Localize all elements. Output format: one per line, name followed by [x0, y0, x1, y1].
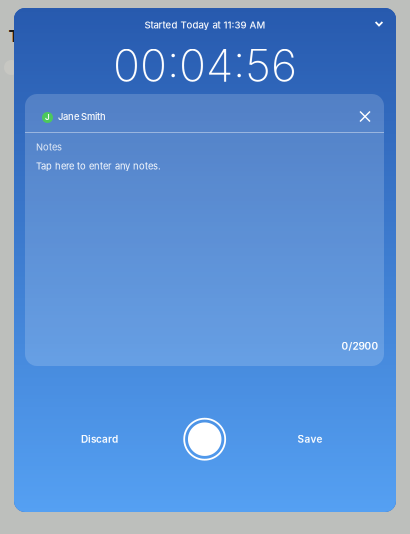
button[interactable]: Remove Jane Smith	[352, 103, 378, 129]
button[interactable]: Stop timer	[181, 415, 229, 463]
staticText: Time	[8, 26, 48, 46]
staticText: 0/2900	[341, 340, 378, 352]
staticText: J	[45, 112, 50, 122]
staticText: Jane Smith	[58, 111, 106, 122]
staticText: Discard	[81, 433, 118, 445]
button[interactable]: Save	[258, 419, 362, 459]
staticText: 00:04:56	[113, 38, 297, 92]
staticText: Save	[297, 433, 322, 445]
button[interactable]: Discard	[47, 419, 151, 459]
staticText: Tap here to enter any notes.	[36, 160, 161, 172]
button[interactable]: Collapse	[366, 13, 392, 35]
staticText: Notes	[36, 141, 62, 153]
staticText: Started Today at 11:39 AM	[144, 19, 265, 31]
